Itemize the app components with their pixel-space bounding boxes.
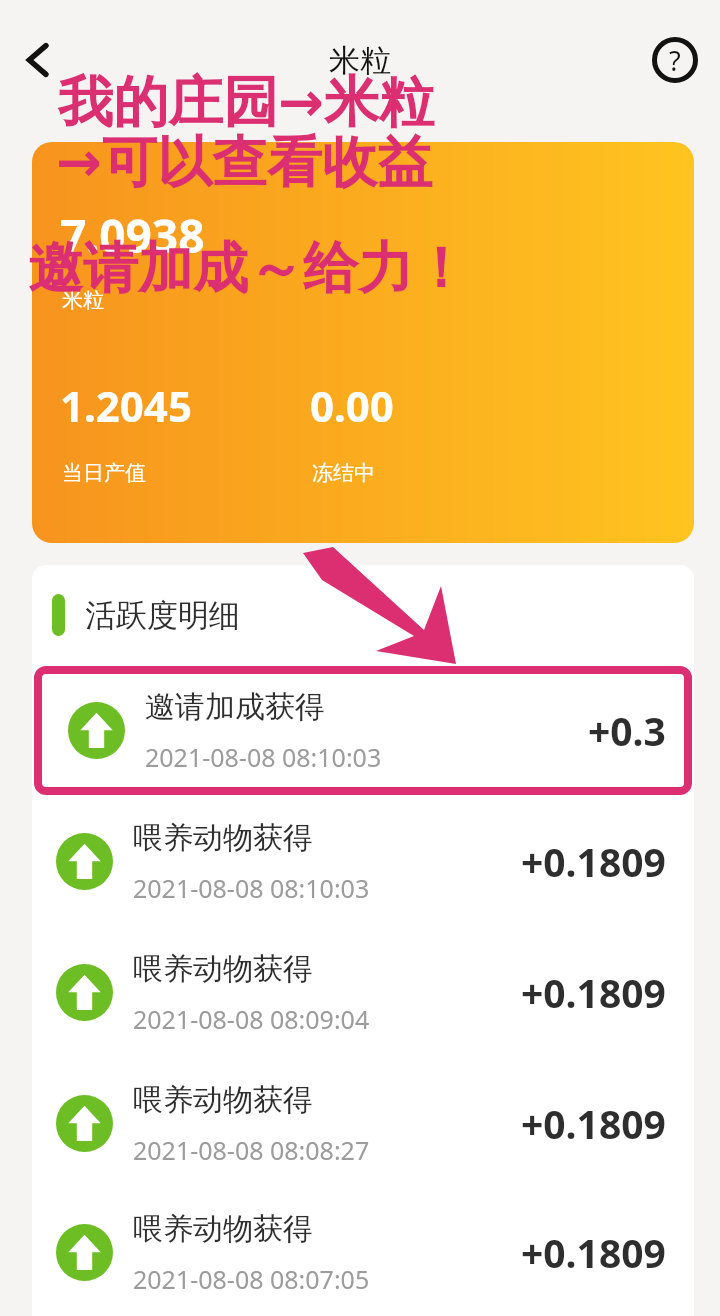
staticText: ? (669, 42, 681, 79)
staticText: 米粒 (329, 41, 391, 80)
button[interactable]: 喂养动物获得 (56, 1058, 666, 1189)
button[interactable]: Help (644, 29, 706, 91)
staticText: +0.1809 (521, 966, 666, 1019)
staticText: 邀请加成～给力！ (28, 234, 468, 303)
staticText: +0.1809 (521, 1097, 666, 1150)
staticText: 喂养动物获得 (133, 1081, 313, 1119)
staticText: +0.3 (588, 704, 666, 757)
staticText: 2021-08-08 08:07:05 (133, 1262, 370, 1296)
staticText: 喂养动物获得 (133, 950, 313, 988)
staticText: 我的庄园→米粒 (58, 68, 435, 137)
staticText: 1.2045 (60, 377, 192, 434)
button[interactable]: 邀请加成获得 (68, 665, 666, 796)
button[interactable]: 喂养动物获得 (56, 927, 666, 1058)
staticText: 2021-08-08 08:09:04 (133, 1002, 370, 1036)
staticText: 喂养动物获得 (133, 1210, 313, 1248)
staticText: 邀请加成获得 (145, 688, 325, 726)
button[interactable]: 喂养动物获得 (56, 1189, 666, 1316)
staticText: 活跃度明细 (85, 596, 240, 635)
staticText: 7.0938 (60, 204, 205, 267)
staticText: 2021-08-08 08:10:03 (133, 871, 370, 905)
staticText: +0.1809 (521, 835, 666, 888)
staticText: →可以查看收益 (56, 128, 433, 197)
button[interactable]: Back (8, 30, 68, 90)
button[interactable]: 喂养动物获得 (56, 796, 666, 927)
staticText: 2021-08-08 08:08:27 (133, 1133, 370, 1167)
staticText: 当日产值 (62, 460, 146, 486)
staticText: 冻结中 (312, 460, 375, 486)
staticText: +0.1809 (521, 1226, 666, 1279)
staticText: 0.00 (310, 377, 394, 434)
staticText: 2021-08-08 08:10:03 (145, 740, 382, 774)
staticText: 米粒 (62, 287, 104, 313)
button[interactable]: 7.0938 (32, 142, 694, 543)
staticText: 喂养动物获得 (133, 819, 313, 857)
